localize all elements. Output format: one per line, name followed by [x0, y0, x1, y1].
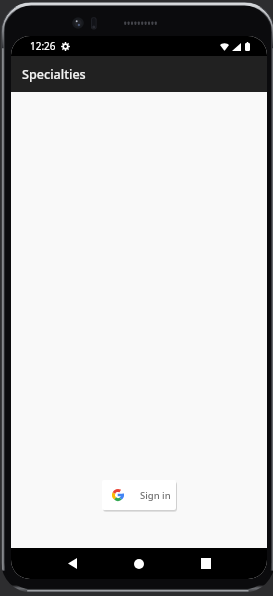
button[interactable]: Back	[46, 548, 98, 579]
staticText: Specialties	[22, 66, 86, 83]
button[interactable]: Specialties	[11, 56, 267, 92]
button[interactable]: Home	[113, 548, 165, 579]
staticText: 12:26	[30, 39, 56, 53]
staticText: Sign in	[140, 489, 171, 502]
button[interactable]: Sign in	[102, 480, 176, 510]
button[interactable]: Recent apps	[180, 548, 232, 579]
